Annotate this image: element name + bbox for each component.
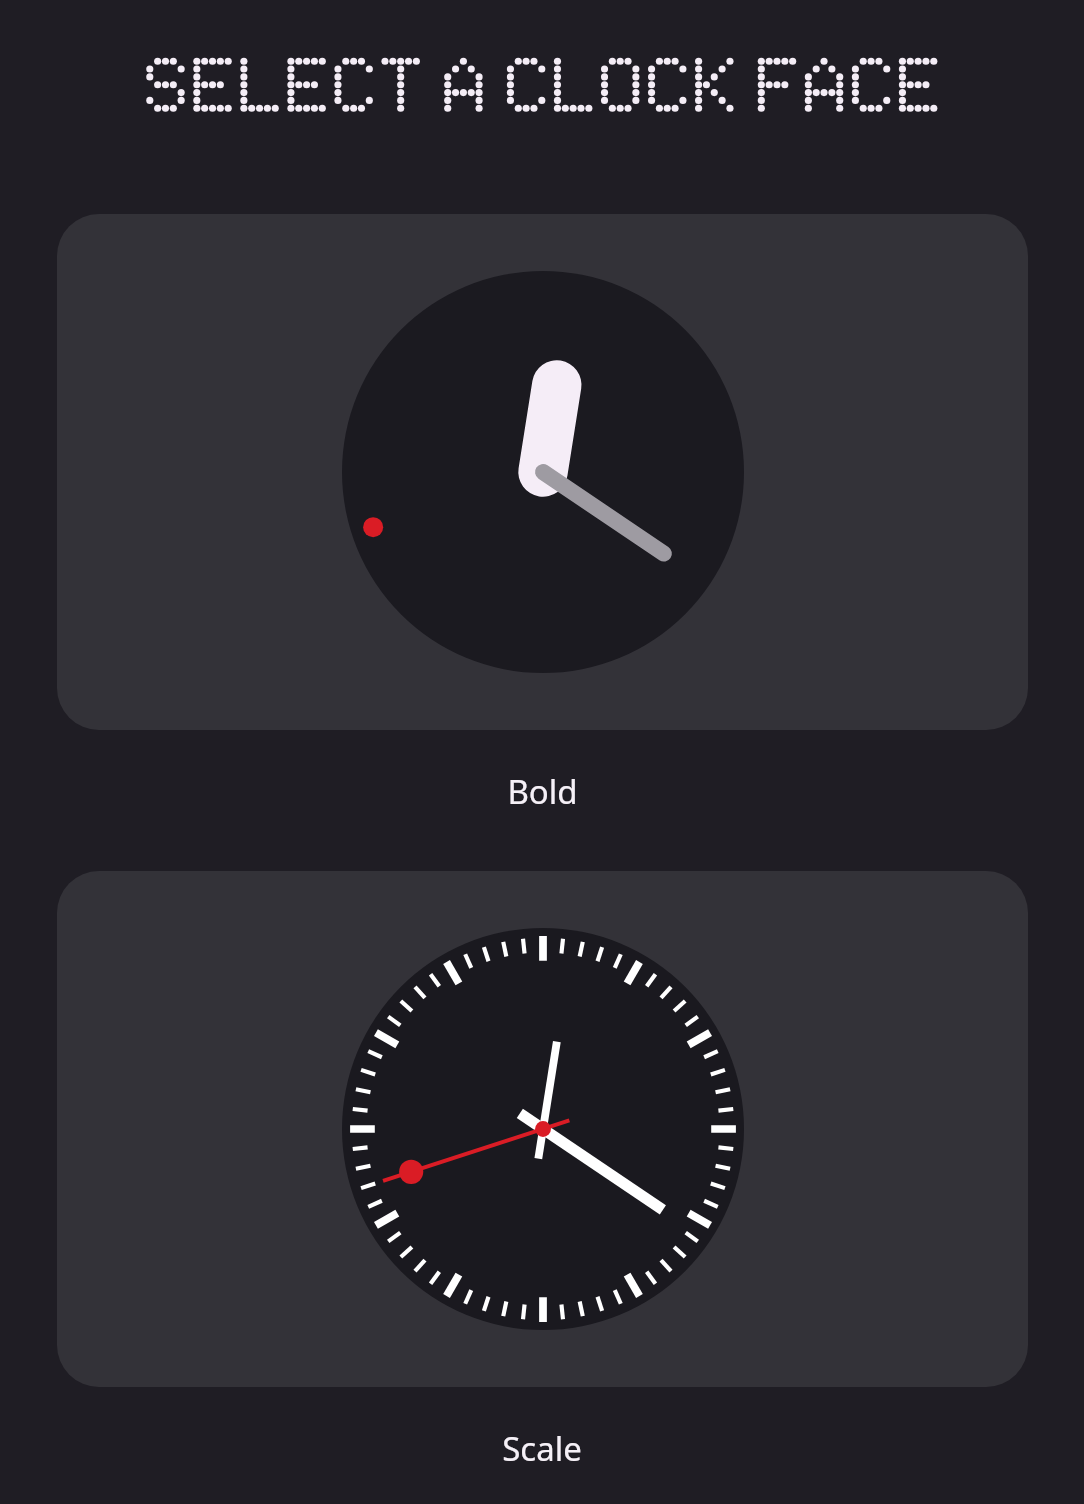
staticText: Scale — [502, 1426, 582, 1471]
staticText: Bold — [507, 769, 578, 814]
button[interactable]: Bold — [0, 769, 1084, 814]
button[interactable]: Scale — [0, 1426, 1084, 1471]
other: SELECT A CLOCK FACE — [0, 0, 1084, 1504]
button[interactable]: Scale clock face preview — [57, 871, 1028, 1387]
button[interactable]: Bold clock face preview — [57, 214, 1028, 730]
